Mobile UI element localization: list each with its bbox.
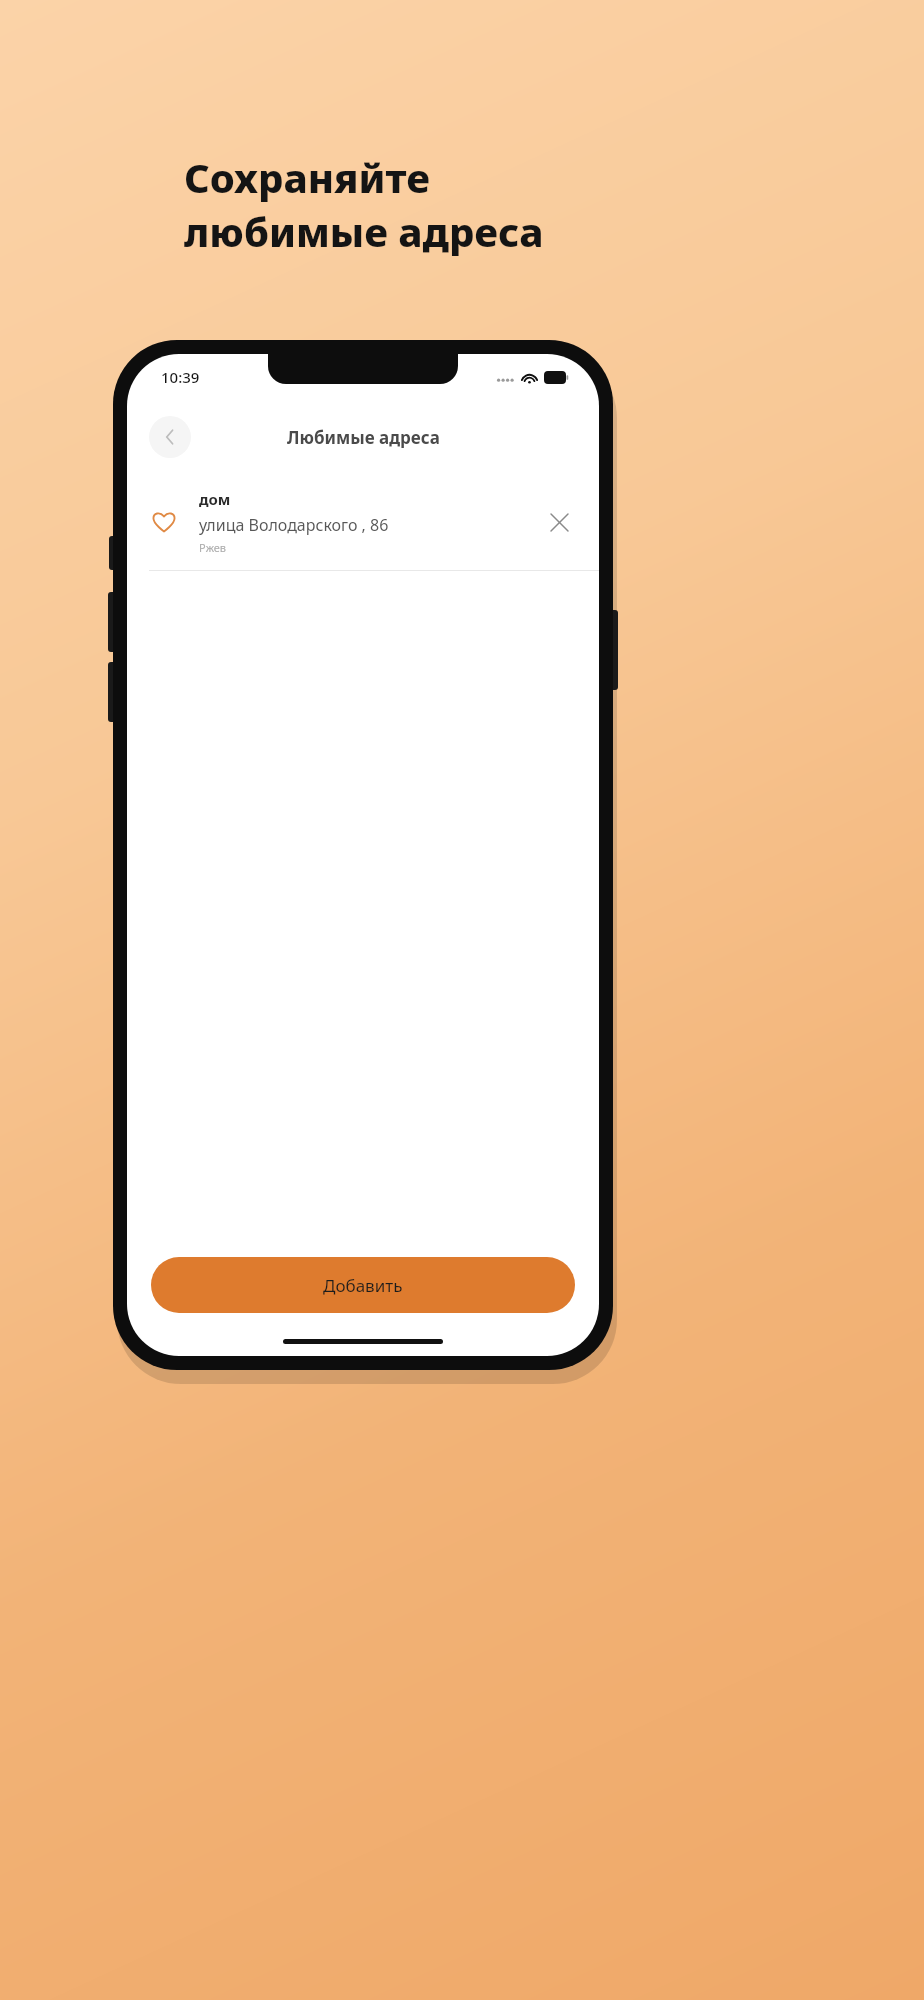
staticText: дом [199,489,231,509]
staticText: Любимые адреса [287,426,440,449]
button[interactable]: Удалить [541,504,577,540]
staticText: улица Володарского , 86 [199,514,389,536]
button[interactable]: Добавить [151,1257,575,1313]
staticText: любимые адреса [184,204,544,258]
button[interactable]: Назад [149,416,191,458]
staticText: Добавить [323,1274,403,1297]
staticText: 10:39 [161,367,200,387]
staticText: Ржев [199,540,227,555]
button[interactable]: дом [127,474,599,570]
staticText: Сохраняйте [184,150,430,204]
